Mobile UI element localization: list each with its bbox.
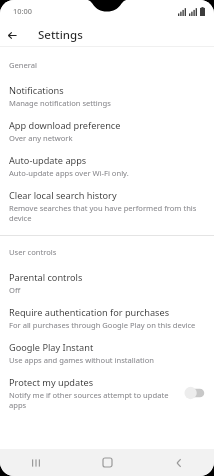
- button[interactable]: Protect my updates toggle: [184, 386, 206, 400]
- staticText: User controls: [9, 247, 57, 257]
- staticText: Remove searches that you have performed …: [9, 203, 206, 223]
- button[interactable]: Require authentication for purchases: [0, 301, 214, 336]
- staticText: Auto-update apps over Wi-Fi only.: [9, 168, 129, 178]
- staticText: General: [9, 60, 37, 70]
- staticText: Require authentication for purchases: [9, 306, 170, 319]
- staticText: Use apps and games without installation: [9, 355, 155, 365]
- staticText: Notify me if other sources attempt to up…: [9, 390, 170, 410]
- button[interactable]: Clear local search history: [0, 184, 214, 229]
- button[interactable]: Protect my updates: [0, 371, 214, 416]
- button[interactable]: Google Play Instant: [0, 336, 214, 371]
- button[interactable]: Back: [143, 449, 214, 476]
- button[interactable]: Home: [72, 449, 143, 476]
- staticText: Over any network: [9, 133, 73, 143]
- staticText: Manage notification settings: [9, 98, 111, 108]
- button[interactable]: Recent apps: [0, 449, 72, 476]
- staticText: Off: [9, 285, 21, 295]
- staticText: Google Play Instant: [9, 341, 94, 354]
- staticText: Clear local search history: [9, 189, 117, 202]
- staticText: App download preference: [9, 119, 121, 132]
- button[interactable]: Parental controls: [0, 266, 214, 301]
- staticText: Notifications: [9, 84, 64, 97]
- staticText: Auto-update apps: [9, 154, 87, 167]
- button[interactable]: Back: [0, 23, 24, 47]
- staticText: Protect my updates: [9, 376, 94, 389]
- button[interactable]: Notifications: [0, 79, 214, 114]
- staticText: 10:00: [13, 6, 32, 16]
- button[interactable]: Auto-update apps: [0, 149, 214, 184]
- staticText: For all purchases through Google Play on…: [9, 320, 196, 330]
- button[interactable]: App download preference: [0, 114, 214, 149]
- staticText: Parental controls: [9, 271, 83, 284]
- staticText: Settings: [38, 27, 83, 43]
